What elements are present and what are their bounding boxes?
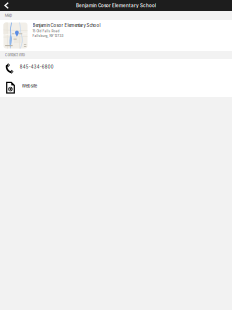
staticText: 15 Old Falls Road xyxy=(32,29,59,33)
button[interactable]: Website xyxy=(0,78,232,97)
button[interactable]: Benjamin Cosor Elementary School xyxy=(0,20,232,51)
staticText: 845-434-6800 xyxy=(20,64,54,70)
staticText: Contact Info xyxy=(5,53,25,57)
staticText: Map xyxy=(5,13,12,18)
button[interactable]: Back xyxy=(0,0,15,11)
staticText: Benjamin Cosor Elementary School xyxy=(76,3,156,8)
button[interactable]: 845-434-6800 xyxy=(0,59,232,78)
staticText: Benjamin Cosor Elementary School xyxy=(32,23,100,28)
staticText: Fallsburg, NY 12733 xyxy=(32,34,63,38)
staticText: Website xyxy=(22,83,37,89)
